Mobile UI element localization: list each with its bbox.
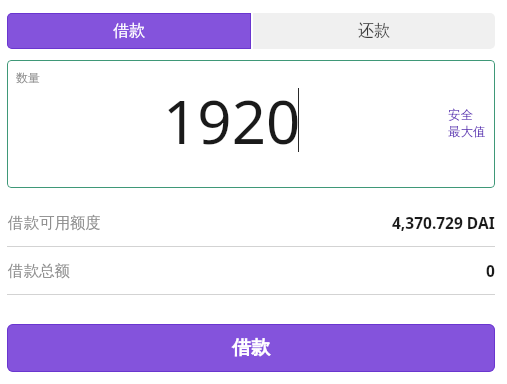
staticText: 数量 <box>16 70 40 85</box>
button[interactable]: 借款总额 <box>0 247 507 294</box>
button[interactable]: 借款 <box>7 13 251 49</box>
staticText: 还款 <box>358 21 390 41</box>
staticText: 借款总额 <box>8 261 70 281</box>
staticText: 借款可用额度 <box>8 213 101 233</box>
staticText: 0 <box>486 260 495 281</box>
button[interactable]: 安全 <box>448 107 495 140</box>
staticText: 借款 <box>113 21 145 41</box>
staticText: 借款 <box>232 336 270 360</box>
staticText: 4,370.729 DAI <box>392 212 495 233</box>
staticText: 最大值 <box>448 124 486 140</box>
staticText: 1920 <box>163 80 301 162</box>
button[interactable]: 还款 <box>253 13 495 49</box>
button[interactable]: 借款可用额度 <box>0 199 507 246</box>
button[interactable]: 数量 amount input field <box>7 60 495 188</box>
staticText: 安全 <box>448 107 473 123</box>
button[interactable]: 借款 <box>7 324 495 372</box>
